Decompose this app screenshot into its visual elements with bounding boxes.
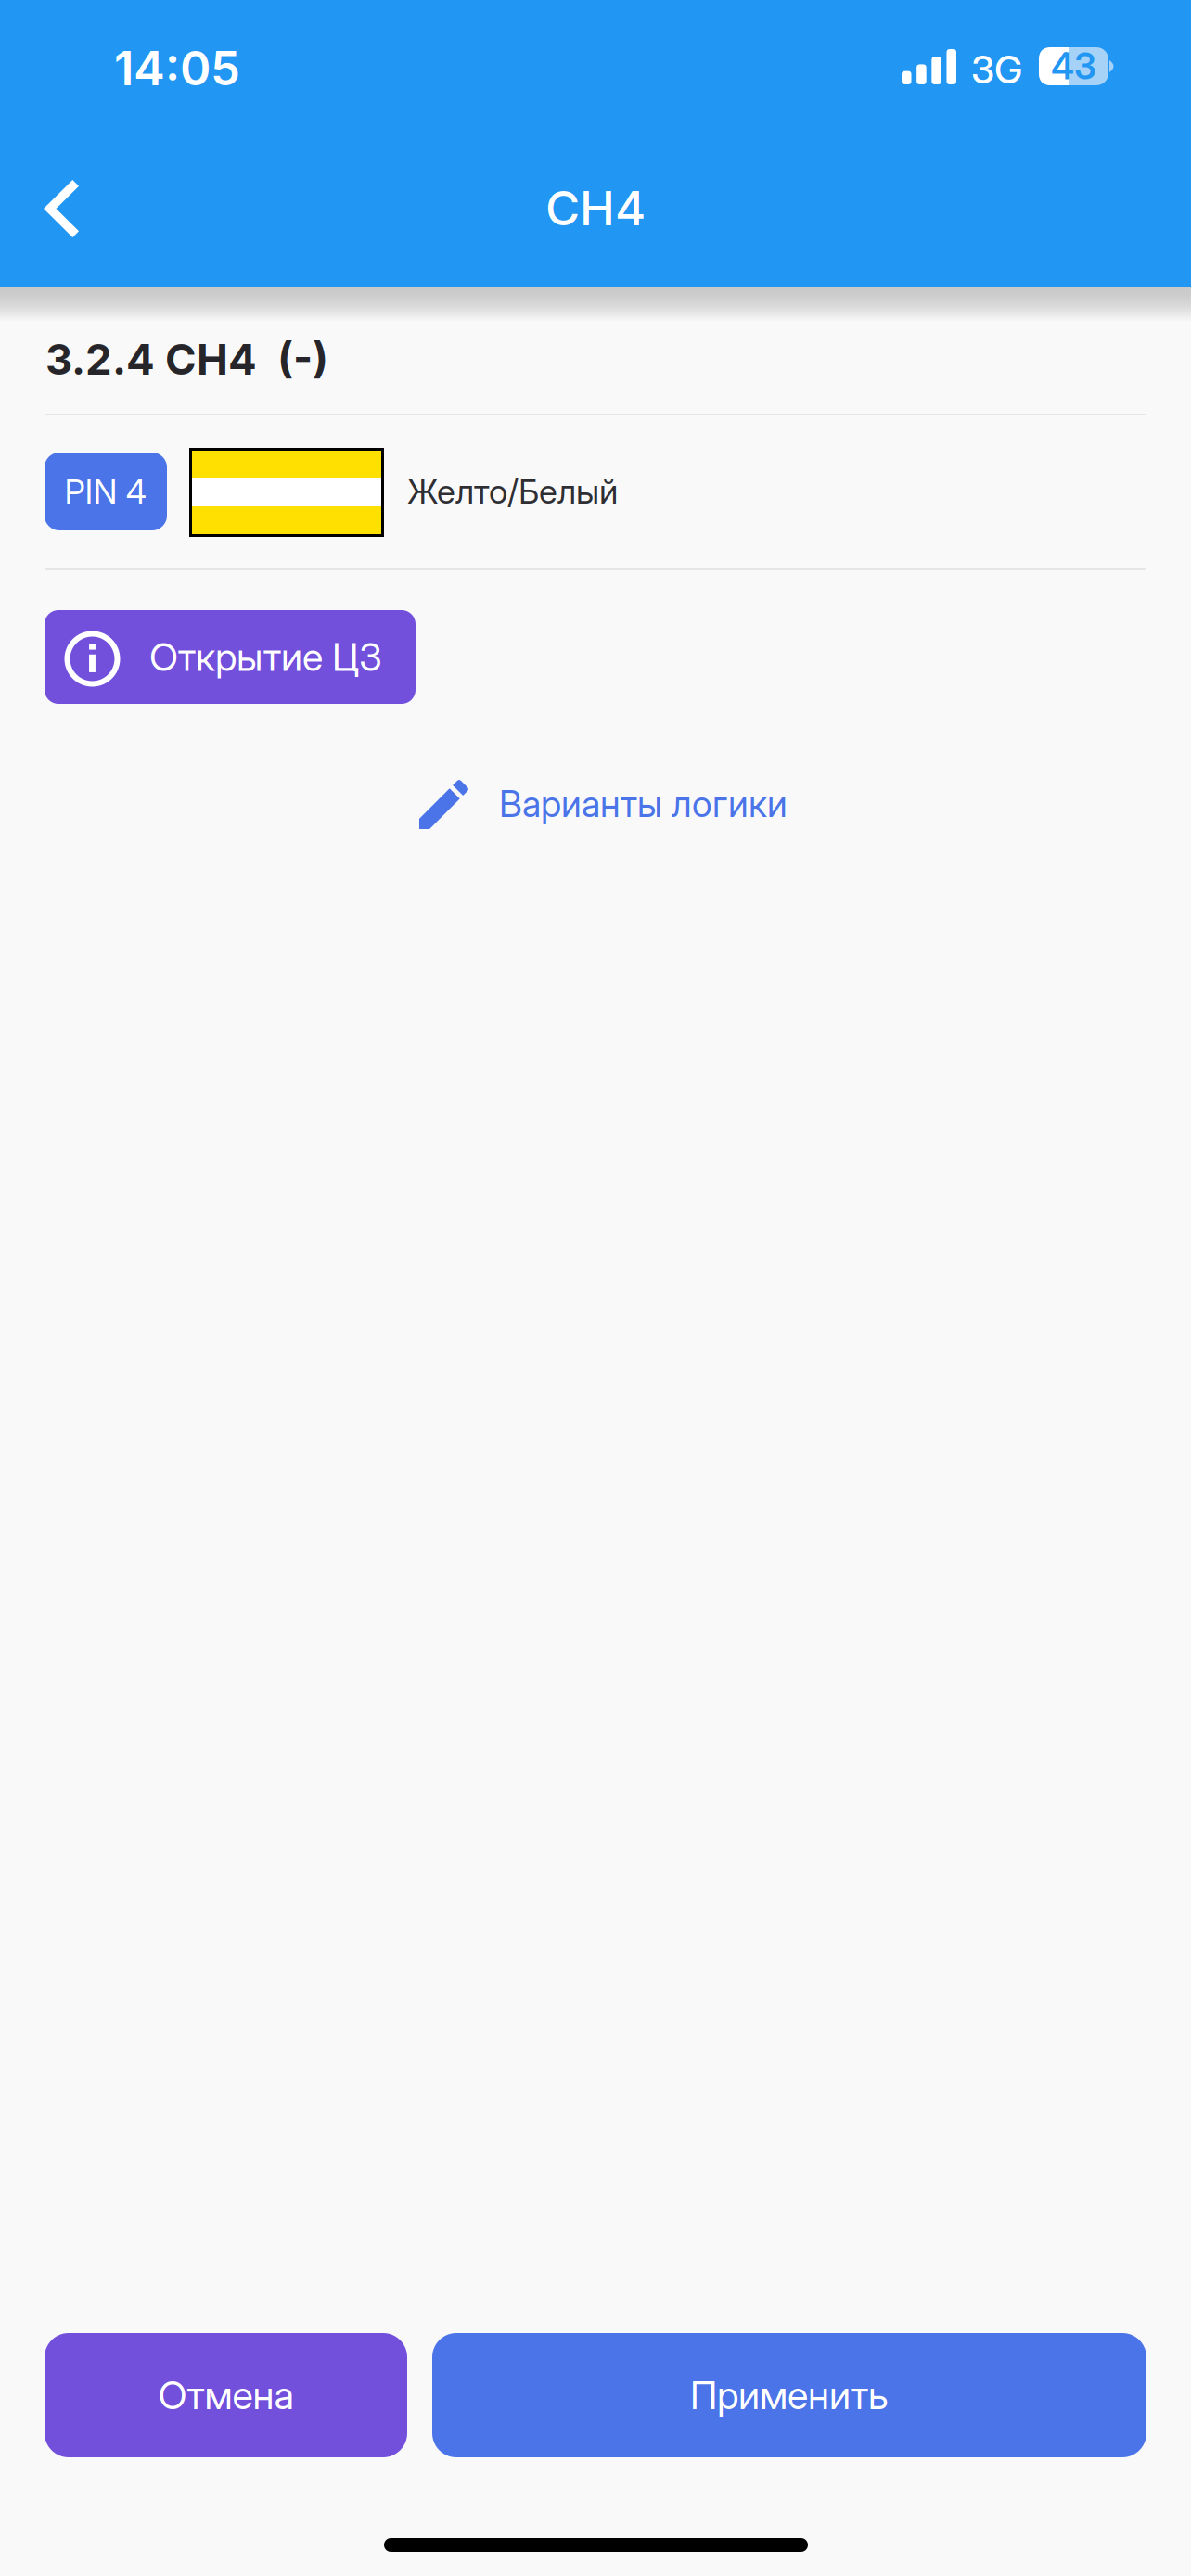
staticText: 14:05 xyxy=(114,40,240,97)
staticText: Отмена xyxy=(158,2372,294,2418)
button[interactable]: Применить xyxy=(432,2333,1146,2457)
staticText: 43 xyxy=(1051,45,1096,88)
staticText: 3.2.4 CH4 (-) xyxy=(45,334,328,385)
staticText: CH4 xyxy=(545,180,646,237)
staticText: Желто/Белый xyxy=(407,471,618,512)
staticText: PIN 4 xyxy=(64,471,147,512)
button[interactable]: Отмена xyxy=(45,2333,407,2457)
staticText: Открытие ЦЗ xyxy=(149,634,382,680)
staticText: Применить xyxy=(690,2372,889,2418)
button[interactable]: Варианты логики xyxy=(419,775,783,833)
staticText: Варианты логики xyxy=(499,782,788,826)
staticText: 3G xyxy=(971,46,1022,93)
button[interactable]: Back xyxy=(0,121,122,287)
button[interactable]: Открытие ЦЗ xyxy=(45,610,416,704)
